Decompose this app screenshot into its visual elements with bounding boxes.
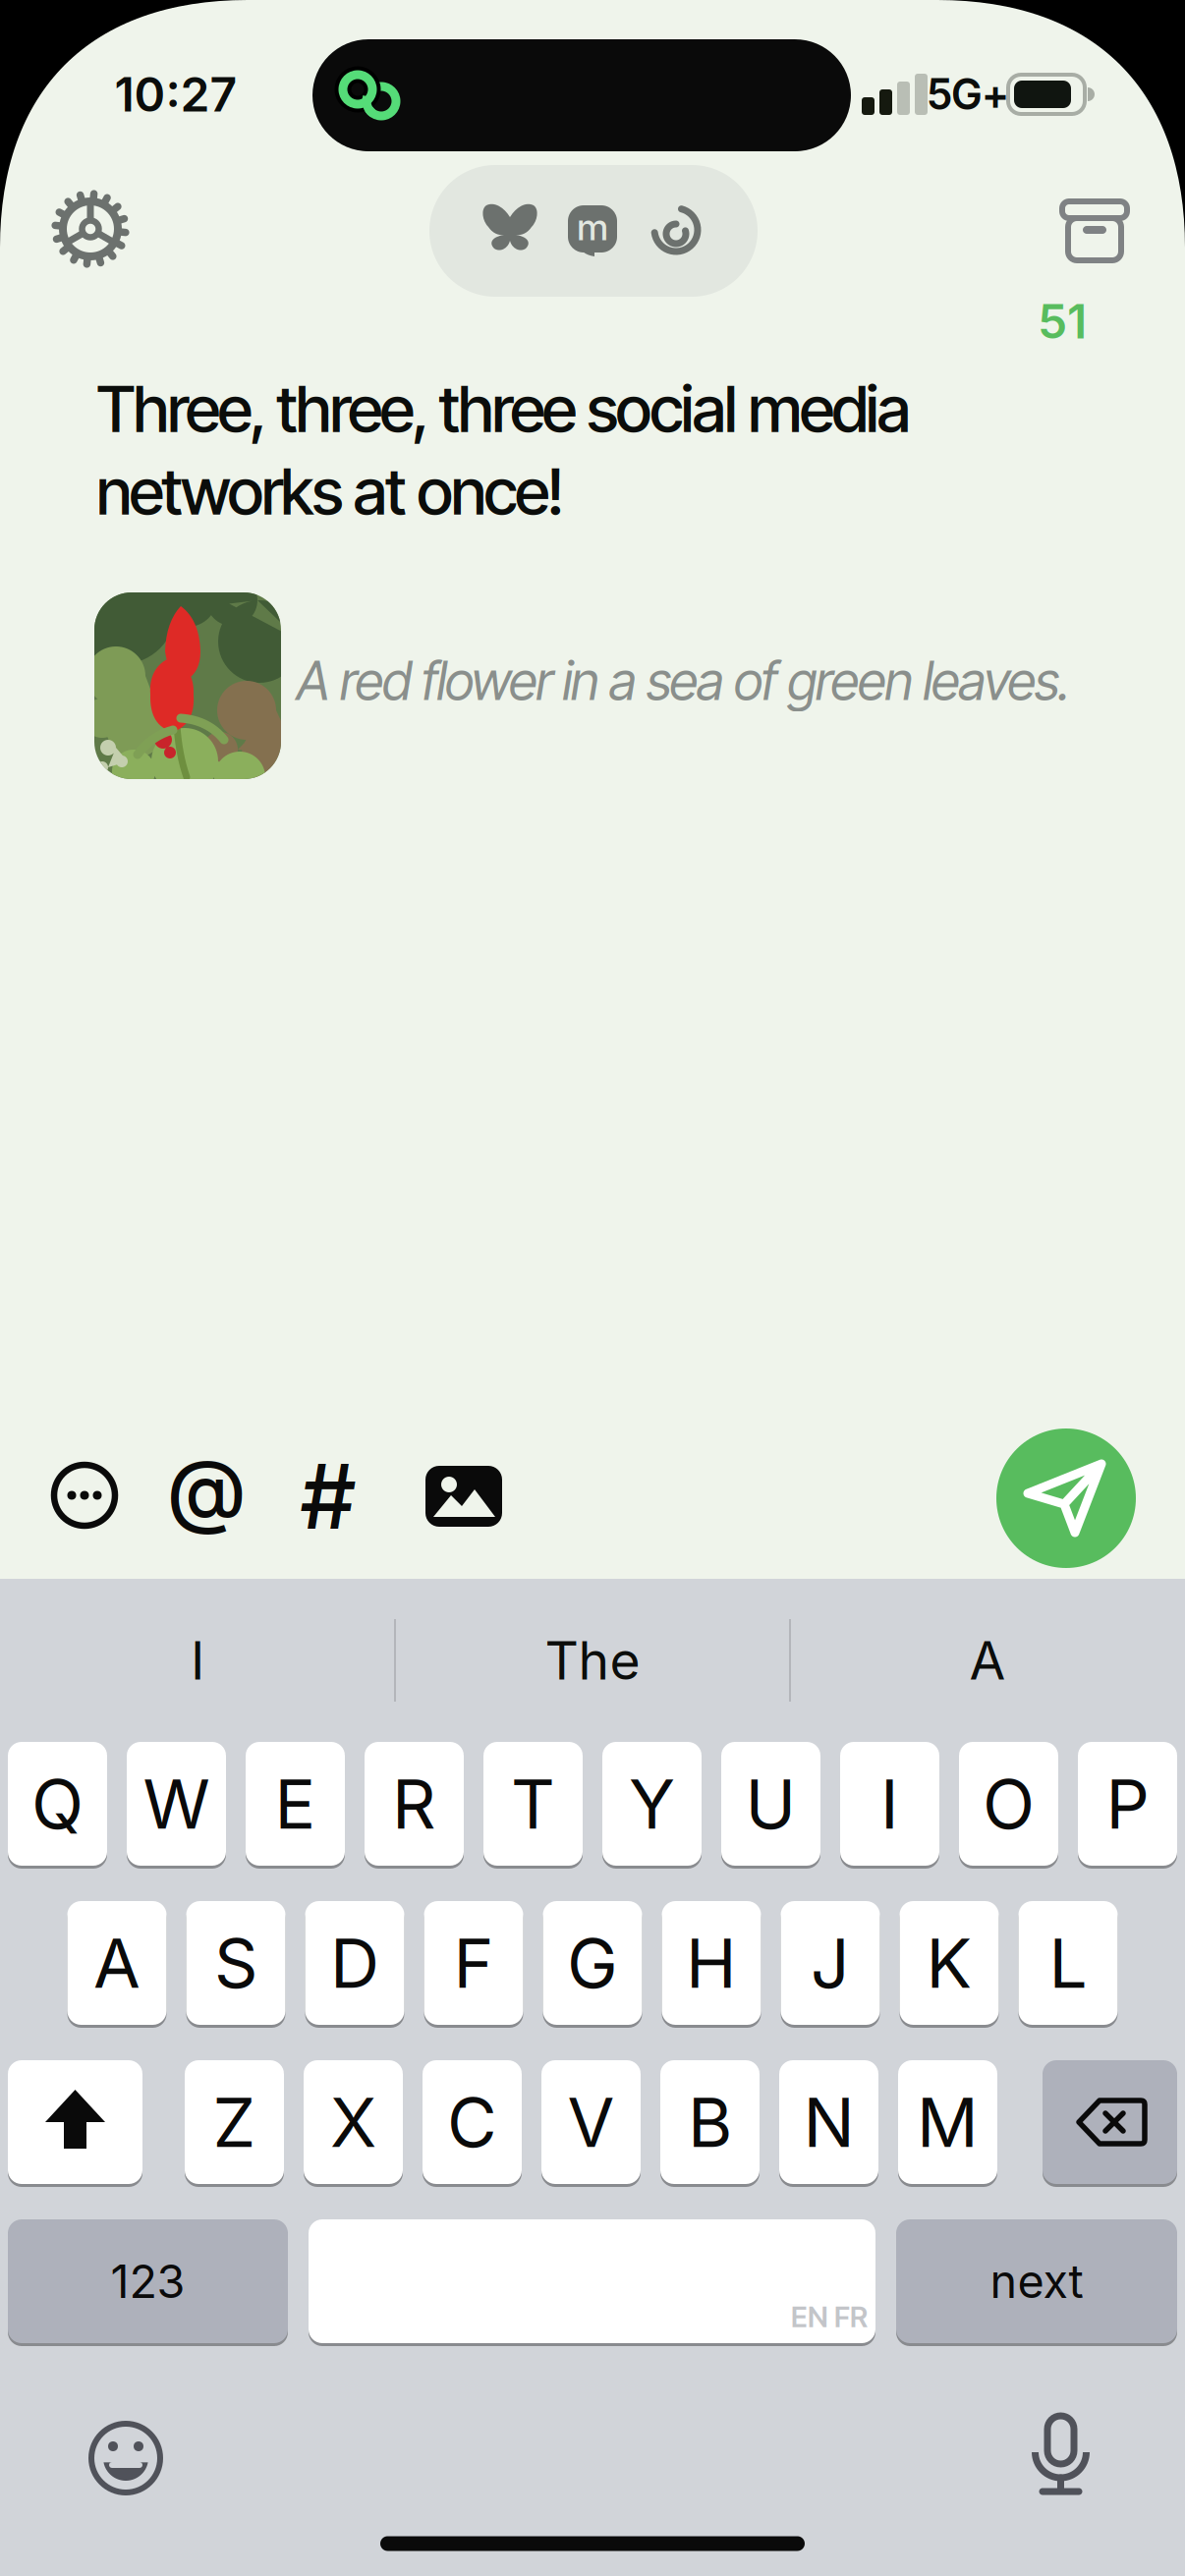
staticText: 51: [1038, 293, 1087, 349]
button[interactable]: I: [11, 1606, 384, 1714]
staticText: 5G+: [927, 69, 1009, 120]
button[interactable]: W: [127, 1742, 226, 1866]
staticText: U: [745, 1763, 796, 1845]
staticText: K: [926, 1922, 972, 2004]
button[interactable]: P: [1078, 1742, 1177, 1866]
staticText: L: [1049, 1922, 1087, 2004]
button[interactable]: Y: [602, 1742, 702, 1866]
button[interactable]: Emoji: [88, 2421, 163, 2495]
button[interactable]: Q: [8, 1742, 107, 1866]
button[interactable]: Drafts: [1060, 198, 1129, 263]
staticText: Q: [31, 1763, 84, 1845]
staticText: next: [990, 2254, 1083, 2309]
staticText: A red flower in a sea of green leaves.: [297, 649, 1071, 712]
button[interactable]: The: [406, 1606, 779, 1714]
button[interactable]: Dictate: [1022, 2416, 1099, 2492]
button[interactable]: H: [662, 1901, 761, 2025]
button[interactable]: Attached image: a red flower: [94, 592, 281, 779]
staticText: G: [567, 1922, 618, 2004]
button[interactable]: D: [305, 1901, 404, 2025]
button[interactable]: N: [779, 2060, 878, 2184]
button[interactable]: 123: [8, 2219, 288, 2343]
button[interactable]: Mention: [162, 1450, 251, 1529]
staticText: I: [191, 1629, 204, 1692]
button[interactable]: next: [896, 2219, 1177, 2343]
button[interactable]: U: [721, 1742, 820, 1866]
staticText: O: [983, 1763, 1035, 1845]
button[interactable]: S: [186, 1901, 285, 2025]
button[interactable]: Space: [309, 2219, 875, 2343]
button[interactable]: More options: [50, 1461, 119, 1530]
button[interactable]: R: [365, 1742, 464, 1866]
button[interactable]: F: [424, 1901, 523, 2025]
staticText: 123: [111, 2254, 185, 2309]
button[interactable]: X: [304, 2060, 403, 2184]
staticText: The: [545, 1629, 640, 1692]
staticText: A: [93, 1922, 141, 2004]
staticText: R: [392, 1763, 436, 1845]
staticText: J: [811, 1922, 850, 2004]
button[interactable]: V: [541, 2060, 641, 2184]
button[interactable]: J: [781, 1901, 880, 2025]
button[interactable]: Delete: [1043, 2060, 1177, 2184]
button[interactable]: A: [801, 1606, 1174, 1714]
staticText: S: [214, 1922, 257, 2004]
staticText: W: [143, 1763, 210, 1845]
staticText: M: [917, 2081, 979, 2163]
staticText: I: [880, 1763, 899, 1845]
staticText: C: [447, 2081, 497, 2163]
staticText: F: [453, 1922, 494, 2004]
staticText: m: [577, 205, 608, 249]
staticText: networks at once!: [96, 452, 565, 530]
button[interactable]: Settings: [51, 190, 130, 268]
staticText: D: [330, 1922, 379, 2004]
button[interactable]: K: [900, 1901, 999, 2025]
staticText: T: [511, 1763, 555, 1845]
staticText: 10:27: [114, 67, 237, 122]
button[interactable]: L: [1018, 1901, 1118, 2025]
staticText: Z: [213, 2081, 256, 2163]
button[interactable]: Z: [185, 2060, 284, 2184]
button[interactable]: O: [959, 1742, 1058, 1866]
staticText: P: [1106, 1763, 1149, 1845]
staticText: V: [567, 2081, 615, 2163]
staticText: E: [275, 1763, 316, 1845]
button[interactable]: Shift: [8, 2060, 142, 2184]
staticText: X: [330, 2081, 376, 2163]
staticText: Y: [629, 1763, 675, 1845]
button[interactable]: G: [543, 1901, 642, 2025]
button[interactable]: A: [67, 1901, 167, 2025]
button[interactable]: I: [840, 1742, 939, 1866]
button[interactable]: B: [660, 2060, 760, 2184]
staticText: B: [688, 2081, 732, 2163]
staticText: Three, three, three social media: [96, 370, 911, 448]
button[interactable]: M: [898, 2060, 997, 2184]
button[interactable]: E: [246, 1742, 345, 1866]
staticText: #: [300, 1444, 357, 1549]
button[interactable]: T: [483, 1742, 583, 1866]
staticText: H: [686, 1922, 737, 2004]
button[interactable]: Hashtag: [289, 1457, 367, 1536]
staticText: EN FR: [791, 2299, 868, 2334]
button[interactable]: Attach image: [425, 1466, 502, 1527]
button[interactable]: Post: [996, 1428, 1136, 1568]
button[interactable]: C: [423, 2060, 522, 2184]
staticText: A: [969, 1629, 1006, 1692]
button[interactable]: Selected networks: Bluesky, Mastodon, Th…: [429, 165, 758, 297]
staticText: @: [167, 1441, 246, 1537]
staticText: N: [803, 2081, 854, 2163]
